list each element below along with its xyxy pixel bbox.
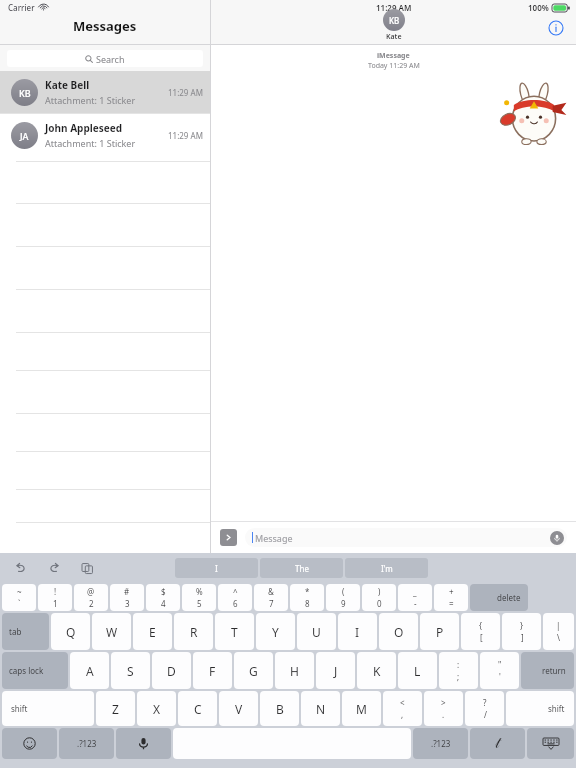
button[interactable]: D — [152, 652, 191, 689]
staticText: M — [356, 701, 367, 717]
button[interactable]: KB — [383, 9, 405, 31]
button[interactable]: M — [342, 691, 381, 726]
button[interactable]: } — [502, 613, 541, 650]
button[interactable]: # — [110, 584, 144, 611]
button[interactable]: Message — [245, 528, 567, 547]
button[interactable]: Details — [548, 20, 564, 36]
button[interactable]: R — [174, 613, 213, 650]
staticText: 4 — [161, 598, 166, 609]
button[interactable]: : — [439, 652, 478, 689]
button[interactable]: X — [137, 691, 176, 726]
staticText: W — [106, 624, 118, 640]
button[interactable]: $ — [146, 584, 180, 611]
button[interactable]: ? — [465, 691, 504, 726]
button[interactable]: Dictation — [116, 728, 171, 759]
button[interactable]: < — [383, 691, 422, 726]
staticText: ; — [457, 671, 460, 682]
button[interactable]: J — [316, 652, 355, 689]
button[interactable]: L — [398, 652, 437, 689]
staticText: ! — [54, 586, 57, 597]
staticText: X — [153, 701, 161, 717]
button[interactable]: return — [521, 652, 574, 689]
staticText: 2 — [89, 598, 94, 609]
button[interactable]: O — [379, 613, 418, 650]
button[interactable]: { — [461, 613, 500, 650]
button[interactable]: Q — [51, 613, 90, 650]
button[interactable]: Search — [7, 50, 203, 67]
button[interactable]: ~ — [2, 584, 36, 611]
button[interactable]: E — [133, 613, 172, 650]
button[interactable]: K — [357, 652, 396, 689]
button[interactable]: caps lock — [2, 652, 68, 689]
button[interactable]: Dictate — [550, 531, 564, 545]
button[interactable]: ( — [326, 584, 360, 611]
staticText: Carrier — [8, 2, 35, 13]
button[interactable]: I — [175, 558, 258, 578]
button[interactable]: Redo — [46, 560, 62, 576]
staticText: I — [215, 563, 218, 574]
button[interactable]: ^ — [218, 584, 252, 611]
staticText: ? — [483, 697, 487, 708]
button[interactable]: + — [434, 584, 468, 611]
button[interactable]: H — [275, 652, 314, 689]
button[interactable]: @ — [74, 584, 108, 611]
button[interactable]: S — [111, 652, 150, 689]
button[interactable]: Hide keyboard — [527, 728, 574, 759]
button[interactable]: I'm — [345, 558, 428, 578]
button[interactable]: ) — [362, 584, 396, 611]
button[interactable]: _ — [398, 584, 432, 611]
button[interactable]: The — [260, 558, 343, 578]
button[interactable]: N — [301, 691, 340, 726]
button[interactable]: I — [338, 613, 377, 650]
button[interactable]: B — [260, 691, 299, 726]
button[interactable]: A — [70, 652, 109, 689]
staticText: ] — [521, 632, 524, 643]
staticText: 7 — [269, 598, 274, 609]
button[interactable]: C — [178, 691, 217, 726]
staticText: \ — [557, 632, 560, 643]
button[interactable]: JA — [0, 114, 210, 156]
button[interactable]: " — [480, 652, 519, 689]
button[interactable]: shift — [506, 691, 574, 726]
button[interactable]: & — [254, 584, 288, 611]
staticText: Message — [255, 532, 293, 544]
button[interactable]: Undo — [13, 560, 29, 576]
button[interactable]: Y — [256, 613, 295, 650]
button[interactable]: F — [193, 652, 232, 689]
staticText: JA — [20, 130, 29, 142]
button[interactable]: KB — [0, 71, 210, 113]
staticText: K — [373, 663, 381, 679]
button[interactable]: W — [92, 613, 131, 650]
button[interactable]: shift — [2, 691, 94, 726]
staticText: % — [196, 586, 203, 597]
button[interactable]: Z — [96, 691, 135, 726]
button[interactable]: G — [234, 652, 273, 689]
staticText: J — [334, 663, 338, 679]
button[interactable]: App drawer — [220, 529, 237, 546]
button[interactable]: * — [290, 584, 324, 611]
button[interactable]: .?123 — [413, 728, 468, 759]
button[interactable]: % — [182, 584, 216, 611]
staticText: KB — [19, 87, 31, 99]
staticText: / — [484, 709, 487, 720]
button[interactable]: U — [297, 613, 336, 650]
button[interactable]: T — [215, 613, 254, 650]
button[interactable]: ! — [38, 584, 72, 611]
staticText: 11:29 AM — [168, 87, 203, 98]
button[interactable]: P — [420, 613, 459, 650]
staticText: = — [449, 598, 454, 609]
button[interactable]: Handwriting — [470, 728, 525, 759]
button[interactable]: tab — [2, 613, 49, 650]
staticText: Kate — [386, 32, 402, 42]
button[interactable]: > — [424, 691, 463, 726]
button[interactable]: Emoji — [2, 728, 57, 759]
button[interactable]: .?123 — [59, 728, 114, 759]
staticText: & — [268, 586, 274, 597]
button[interactable]: | — [543, 613, 574, 650]
staticText: I'm — [381, 563, 393, 574]
staticText: ~ — [17, 586, 22, 597]
button[interactable]: delete — [470, 584, 528, 611]
button[interactable]: V — [219, 691, 258, 726]
button[interactable]: Paste — [79, 560, 95, 576]
